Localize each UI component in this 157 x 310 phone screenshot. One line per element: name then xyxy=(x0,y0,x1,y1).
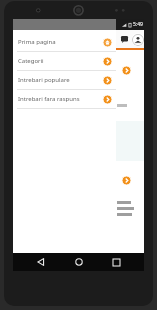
button[interactable]: Back xyxy=(32,253,50,271)
button[interactable]: Home xyxy=(70,253,88,271)
button[interactable]: Intrebari fara raspuns xyxy=(13,90,116,108)
button[interactable]: Intrebari populare xyxy=(13,71,116,89)
button[interactable]: Categorii xyxy=(13,52,116,70)
staticText: Intrebari fara raspuns xyxy=(18,95,103,103)
staticText: Prima pagina xyxy=(18,38,103,46)
staticText: 5:49 xyxy=(133,21,143,28)
button[interactable]: Prima pagina xyxy=(13,33,116,51)
button[interactable]: Recent apps xyxy=(107,253,125,271)
staticText: Categorii xyxy=(18,57,103,65)
button[interactable]: Messages xyxy=(118,33,130,45)
staticText: Intrebari populare xyxy=(18,76,103,84)
button[interactable]: Profile xyxy=(132,33,144,46)
